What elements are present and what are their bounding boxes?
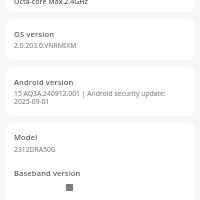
staticText: Android version: [14, 77, 186, 87]
staticText: 2.0.203.0.VNRMIXM: [14, 41, 186, 50]
staticText: OS version: [14, 29, 186, 39]
staticText: 2312DRA50G: [14, 145, 186, 154]
button[interactable]: Android version: [6, 67, 195, 116]
staticText: Model: [14, 132, 186, 142]
button[interactable]: Baseband version: [6, 158, 195, 200]
button[interactable]: Model: [6, 123, 195, 158]
button[interactable]: Octa-core Max 2.4GHz: [6, 0, 195, 12]
staticText: Baseband version: [14, 168, 186, 178]
staticText: Octa-core Max 2.4GHz: [14, 0, 186, 7]
button[interactable]: OS version: [6, 19, 195, 60]
staticText: 15 AQ3A.240912.001 | Android security up…: [14, 89, 186, 106]
